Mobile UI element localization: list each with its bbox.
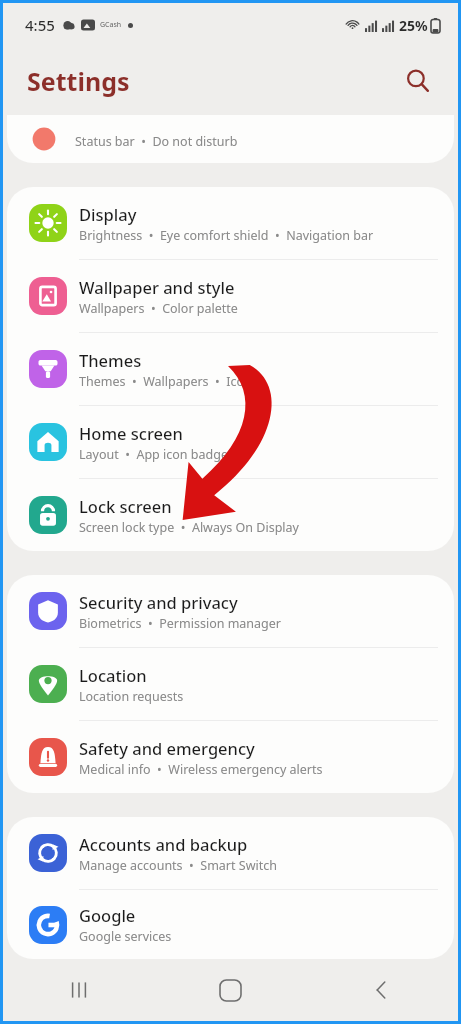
staticText: Biometrics • Permission manager <box>79 615 282 632</box>
staticText: Medical info • Wireless emergency alerts <box>79 761 323 778</box>
staticText: 4:55 <box>25 15 55 35</box>
staticText: Location <box>79 664 147 686</box>
staticText: Display <box>79 203 137 225</box>
staticText: Status bar • Do not disturb <box>75 133 238 150</box>
staticText: Wallpaper and style <box>79 276 235 298</box>
staticText: Security and privacy <box>79 591 238 613</box>
button[interactable]: Google <box>7 890 454 959</box>
button[interactable]: Status bar • Do not disturb <box>7 115 454 163</box>
button[interactable]: Accounts and backup <box>7 817 454 890</box>
button[interactable]: Recents <box>3 959 154 1021</box>
staticText: Screen lock type • Always On Display <box>79 519 299 536</box>
staticText: GCash <box>100 20 122 30</box>
button[interactable]: Home screen <box>7 406 454 479</box>
staticText: Brightness • Eye comfort shield • Naviga… <box>79 227 374 244</box>
button[interactable]: Lock screen <box>7 479 454 551</box>
staticText: Lock screen <box>79 495 172 517</box>
staticText: Accounts and backup <box>79 833 248 855</box>
staticText: 25% <box>399 16 428 35</box>
button[interactable]: Safety and emergency <box>7 721 454 793</box>
staticText: Settings <box>27 64 130 98</box>
staticText: Google services <box>79 928 172 945</box>
button[interactable]: Display <box>7 187 454 260</box>
button[interactable]: Home <box>154 959 306 1021</box>
staticText: Themes <box>79 349 142 371</box>
staticText: Location requests <box>79 688 184 705</box>
staticText: Wallpapers • Color palette <box>79 300 238 317</box>
button[interactable]: Themes <box>7 333 454 406</box>
staticText: Safety and emergency <box>79 737 255 759</box>
button[interactable]: Back <box>306 959 458 1021</box>
staticText: Layout • App icon badges <box>79 446 234 463</box>
button[interactable]: Wallpaper and style <box>7 260 454 333</box>
staticText: Home screen <box>79 422 183 444</box>
staticText: Themes • Wallpapers • Icons <box>79 373 258 390</box>
button[interactable]: Security and privacy <box>7 575 454 648</box>
staticText: Google <box>79 904 136 926</box>
button[interactable]: Location <box>7 648 454 721</box>
button[interactable]: Search <box>396 59 440 103</box>
staticText: Manage accounts • Smart Switch <box>79 857 277 874</box>
